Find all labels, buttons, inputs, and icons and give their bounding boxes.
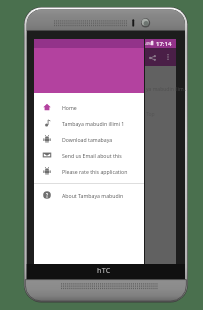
staticText: 34%	[143, 41, 152, 47]
staticText: Tambaya mabudin illimi 1	[62, 120, 125, 127]
button[interactable]: Share	[143, 50, 161, 65]
button[interactable]: Send us Email about this	[34, 147, 145, 163]
staticText: ya mabudin ilim..	[146, 86, 187, 93]
staticText: hTC	[97, 266, 111, 276]
button[interactable]: Please rate this application	[34, 163, 145, 179]
staticText: About Tambaya mabudin	[62, 192, 124, 199]
button[interactable]: About Tambaya mabudin	[34, 187, 145, 203]
staticText: 17:14	[156, 40, 172, 48]
staticText: Download tamabaya	[62, 136, 113, 143]
button[interactable]: Tambaya mabudin illimi 1	[34, 115, 145, 131]
button[interactable]: Home	[34, 99, 145, 115]
staticText: Please rate this application	[62, 168, 128, 175]
staticText: Send us Email about this	[62, 152, 122, 159]
button[interactable]: More options	[161, 50, 174, 64]
button[interactable]: Download tamabaya	[34, 131, 145, 147]
staticText: Home	[62, 104, 77, 111]
